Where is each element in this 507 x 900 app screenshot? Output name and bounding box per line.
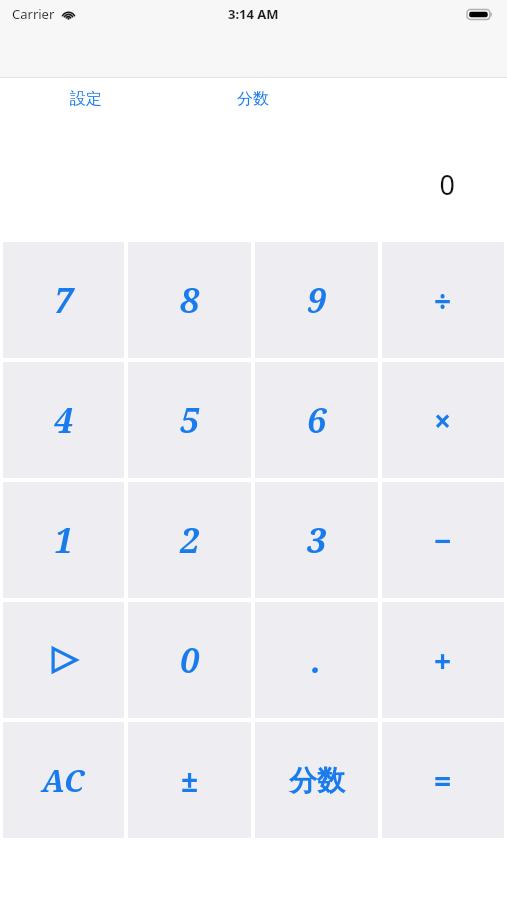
button[interactable]: 1 — [3, 482, 124, 598]
button[interactable]: 分数 — [255, 722, 378, 838]
button[interactable]: 0 — [128, 602, 251, 718]
staticText: = — [434, 760, 452, 801]
button[interactable]: 3 — [255, 482, 378, 598]
staticText: × — [434, 400, 452, 441]
button[interactable]: = — [382, 722, 504, 838]
button[interactable]: 6 — [255, 362, 378, 478]
staticText: 0 — [180, 637, 200, 683]
button[interactable]: Play — [3, 602, 124, 718]
staticText: AC — [42, 760, 85, 801]
button[interactable]: × — [382, 362, 504, 478]
staticText: 7 — [54, 277, 74, 323]
staticText: 設定 — [70, 89, 102, 109]
staticText: 6 — [307, 397, 327, 443]
staticText: 9 — [307, 277, 327, 323]
staticText: Carrier — [12, 5, 55, 23]
button[interactable]: 7 — [3, 242, 124, 358]
staticText: 3 — [307, 517, 327, 563]
staticText: 分数 — [237, 89, 269, 109]
staticText: ÷ — [434, 280, 452, 321]
staticText: 分数 — [289, 763, 345, 798]
staticText: 5 — [180, 397, 200, 443]
staticText: 0 — [439, 166, 455, 203]
button[interactable]: 分数 — [223, 78, 283, 120]
button[interactable]: AC — [3, 722, 124, 838]
staticText: + — [434, 640, 452, 681]
button[interactable]: 4 — [3, 362, 124, 478]
staticText: ± — [181, 760, 199, 801]
button[interactable]: 9 — [255, 242, 378, 358]
button[interactable]: 2 — [128, 482, 251, 598]
staticText: 3:14 AM — [228, 5, 279, 23]
button[interactable]: . — [255, 602, 378, 718]
staticText: 2 — [180, 517, 200, 563]
button[interactable]: − — [382, 482, 504, 598]
staticText: − — [434, 520, 452, 561]
staticText: 8 — [180, 277, 200, 323]
button[interactable]: 8 — [128, 242, 251, 358]
staticText: 4 — [54, 397, 74, 443]
button[interactable]: ± — [128, 722, 251, 838]
button[interactable]: ÷ — [382, 242, 504, 358]
staticText: . — [311, 637, 322, 683]
staticText: 1 — [54, 517, 74, 563]
button[interactable]: + — [382, 602, 504, 718]
button[interactable]: 設定 — [56, 78, 116, 120]
button[interactable]: 5 — [128, 362, 251, 478]
